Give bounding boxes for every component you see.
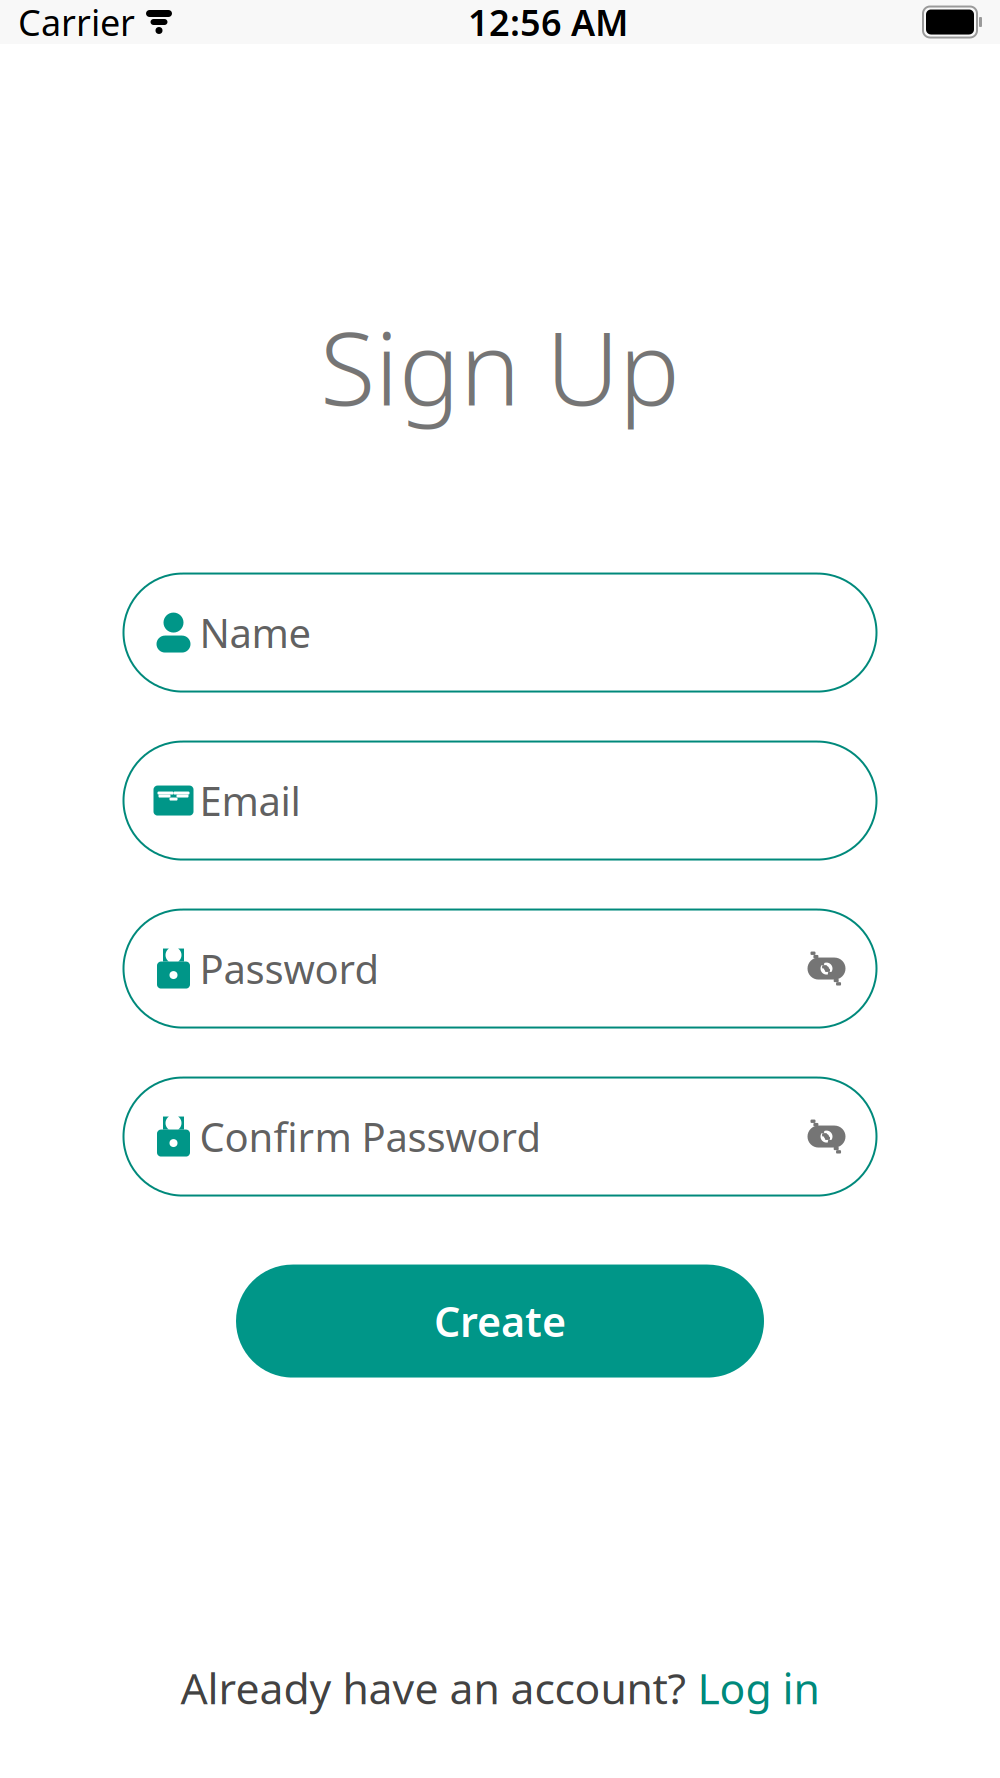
staticText: Already have an account? [180,1659,697,1716]
button[interactable]: Create [236,1265,764,1378]
staticText: 12:56 AM [468,0,628,46]
button[interactable]: Password [123,910,876,1028]
staticText: Carrier [18,0,135,46]
staticText: Log in [697,1659,819,1716]
button[interactable]: Email [123,742,876,860]
staticText: Name [199,606,311,659]
staticText: Confirm Password [199,1110,541,1163]
button[interactable]: Name [123,574,876,692]
staticText: Create [434,1294,566,1348]
staticText: Password [199,942,379,995]
staticText: Sign Up [320,299,680,434]
staticText: Email [199,774,300,827]
button[interactable]: Confirm Password [123,1078,876,1196]
button[interactable]: Already have an account? [180,1659,819,1716]
